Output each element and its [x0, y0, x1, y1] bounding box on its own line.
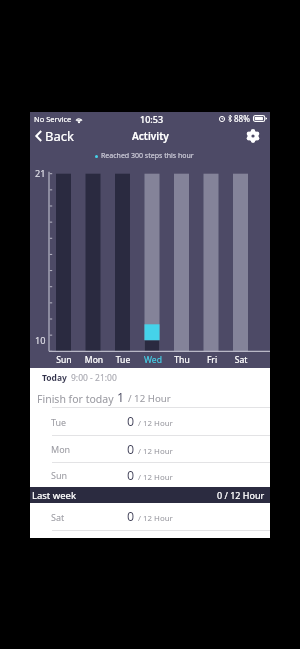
staticText: 0 / 12 Hour	[217, 489, 265, 501]
staticText: Sat	[51, 511, 65, 523]
staticText: / 12 Hour	[138, 446, 173, 457]
staticText: Mon	[51, 443, 71, 455]
staticText: 0	[127, 413, 135, 430]
staticText: 0	[127, 441, 135, 458]
staticText: Tue	[51, 416, 67, 428]
staticText: Tue	[110, 354, 136, 366]
staticText: 1	[117, 389, 125, 406]
staticText: / 12 Hour	[128, 392, 171, 405]
staticText: Today	[42, 372, 67, 384]
staticText: Thu	[169, 354, 195, 366]
button[interactable]: Last week	[30, 487, 270, 503]
button[interactable]: Back	[30, 124, 78, 147]
staticText: 9:00 - 21:00	[71, 372, 117, 384]
staticText: Last week	[32, 489, 77, 502]
staticText: 88%	[234, 113, 250, 124]
staticText: / 12 Hour	[138, 472, 173, 483]
staticText: 0	[127, 508, 135, 525]
staticText: Mon	[81, 354, 107, 366]
button[interactable]: Sun	[30, 463, 270, 487]
staticText: / 12 Hour	[138, 418, 173, 429]
staticText: No Service	[34, 114, 72, 124]
button[interactable]: Settings	[242, 125, 263, 146]
staticText: Sun	[51, 469, 68, 481]
staticText: Sun	[51, 354, 77, 366]
staticText: Sat	[228, 354, 254, 366]
staticText: Back	[45, 127, 74, 145]
staticText: 10:53	[140, 113, 164, 125]
button[interactable]: Tue	[30, 408, 270, 436]
staticText: Wed	[140, 354, 166, 366]
staticText: 21	[35, 167, 46, 180]
button[interactable]: Finish for today	[30, 387, 270, 407]
staticText: 0	[127, 467, 135, 484]
staticText: / 12 Hour	[138, 513, 173, 524]
button[interactable]: Sat	[30, 503, 270, 531]
staticText: Reached 300 steps this hour	[101, 151, 194, 161]
button[interactable]: Mon	[30, 436, 270, 463]
button[interactable]: Today	[30, 368, 270, 387]
staticText: Finish for today	[37, 392, 114, 406]
staticText: Fri	[199, 354, 225, 366]
staticText: 10	[35, 334, 46, 347]
staticText: Activity	[132, 129, 169, 143]
